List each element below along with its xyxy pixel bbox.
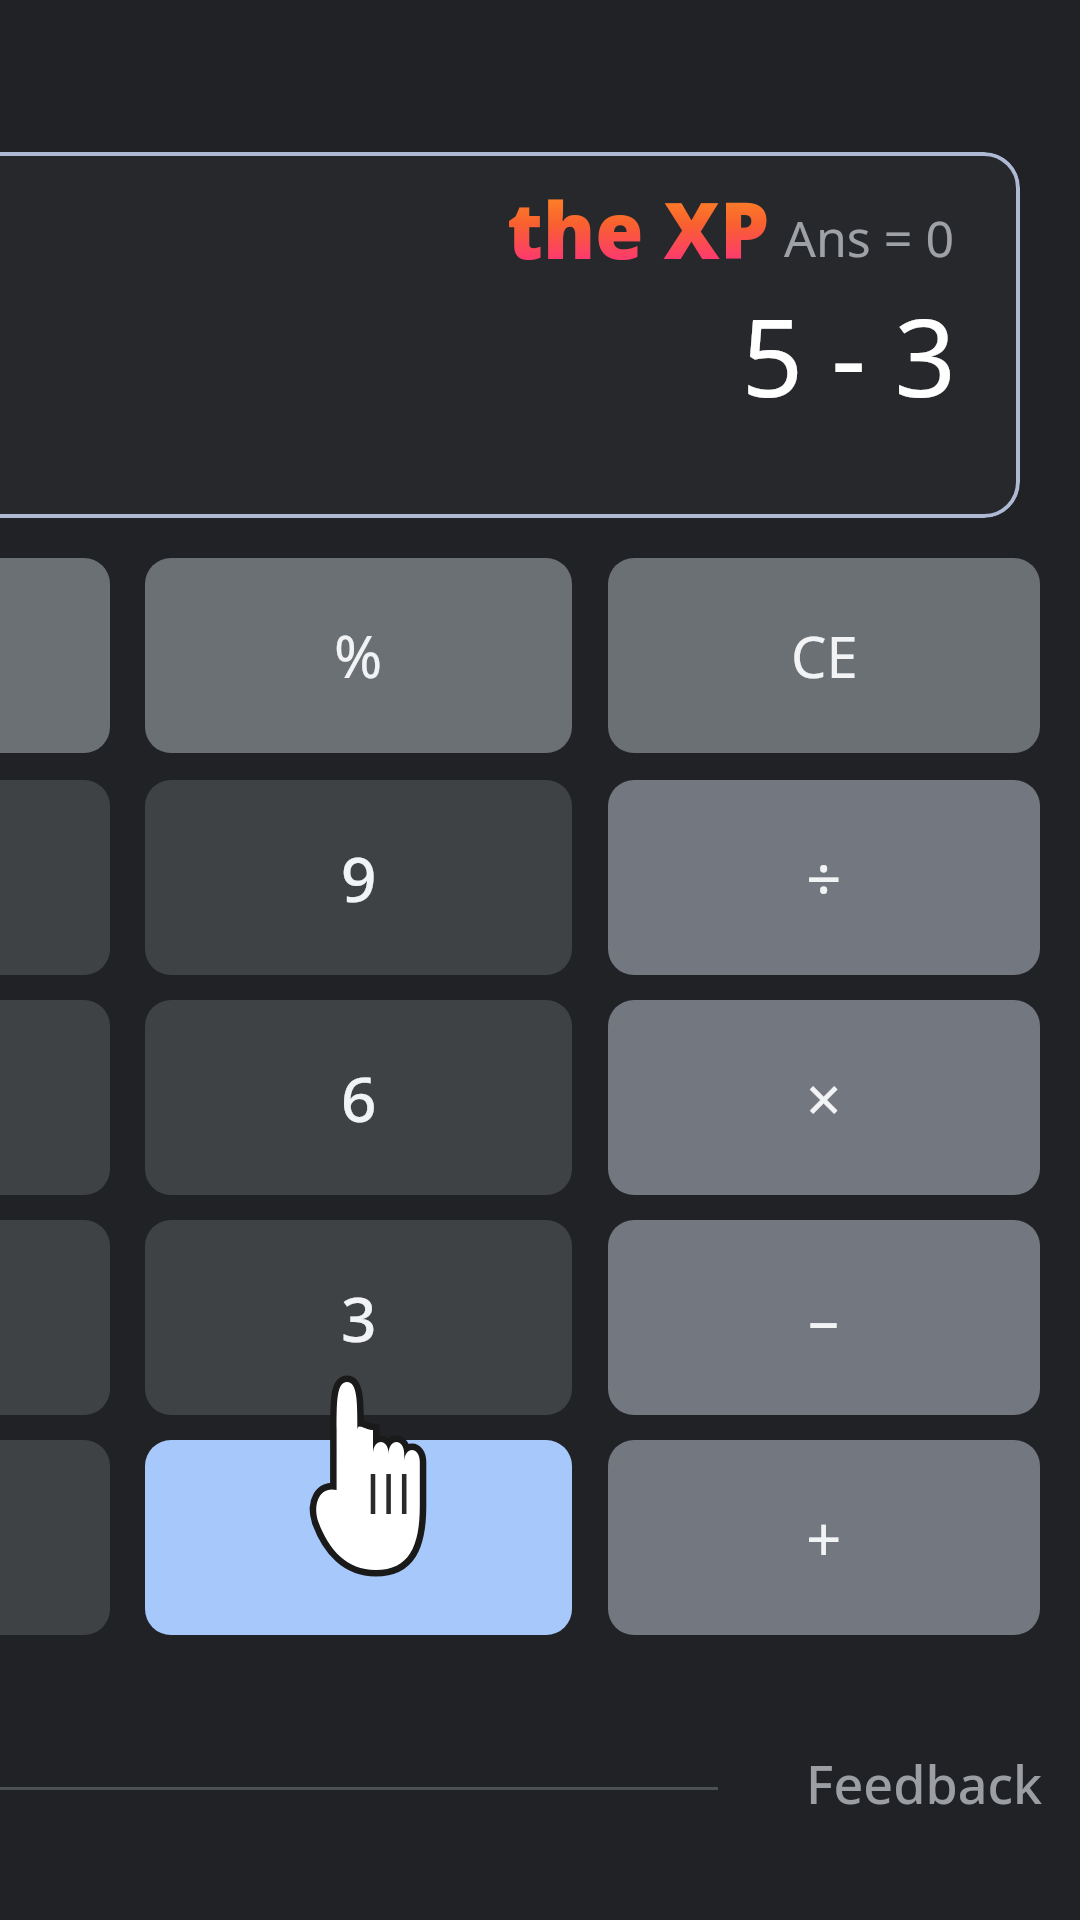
staticText: % [334, 616, 383, 695]
staticText: – [808, 1276, 840, 1360]
button[interactable]: Percent [145, 558, 572, 753]
button[interactable]: Key [0, 1220, 110, 1415]
staticText: 6 [341, 1056, 377, 1140]
staticText: Feedback [806, 1748, 1042, 1819]
button[interactable]: Key [0, 780, 110, 975]
button[interactable]: Key [0, 1000, 110, 1195]
staticText: 5 - 3 [741, 282, 956, 429]
button[interactable]: 3 [145, 1220, 572, 1415]
staticText: × [806, 1056, 842, 1140]
staticText: the XP [507, 176, 770, 282]
button[interactable]: Multiply [608, 1000, 1040, 1195]
staticText: Ans = 0 [784, 204, 954, 272]
button[interactable]: 6 [145, 1000, 572, 1195]
button[interactable]: the XP [0, 152, 1020, 518]
staticText: + [806, 1496, 842, 1580]
staticText: 9 [341, 836, 377, 920]
button[interactable]: 9 [145, 780, 572, 975]
button[interactable]: Add [608, 1440, 1040, 1635]
button[interactable]: Feedback [780, 1735, 1042, 1831]
staticText: 3 [341, 1276, 377, 1360]
button[interactable]: Key [0, 1440, 110, 1635]
button[interactable]: Key [0, 558, 110, 753]
button[interactable]: Equals [145, 1440, 572, 1635]
button[interactable]: CE [608, 558, 1040, 753]
staticText: CE [791, 618, 858, 694]
staticText: = [341, 1496, 377, 1580]
staticText: ÷ [806, 836, 842, 920]
button[interactable]: Subtract [608, 1220, 1040, 1415]
button[interactable]: Divide [608, 780, 1040, 975]
